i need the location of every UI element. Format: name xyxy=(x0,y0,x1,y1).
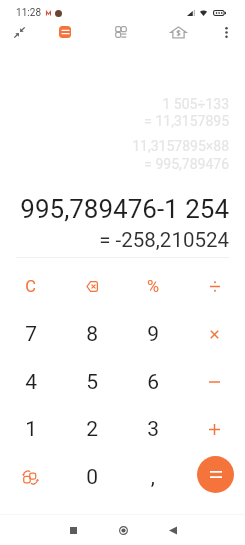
button[interactable]: Add xyxy=(184,405,245,453)
button[interactable]: 4 xyxy=(0,358,61,406)
button[interactable]: Equals xyxy=(197,456,234,493)
button[interactable]: Convert units xyxy=(0,453,61,501)
staticText: = 995,789476 xyxy=(144,156,229,172)
button[interactable]: 7 xyxy=(0,310,61,358)
button[interactable]: 8 xyxy=(61,310,122,358)
button[interactable]: Back xyxy=(158,515,188,545)
staticText: 9 xyxy=(147,322,159,347)
button[interactable]: Unit converter xyxy=(110,21,132,43)
button[interactable]: , xyxy=(122,453,183,501)
staticText: = -258,210524 xyxy=(99,228,229,252)
staticText: C xyxy=(25,277,36,296)
button[interactable]: Subtract xyxy=(184,358,245,406)
staticText: = 11,3157895 xyxy=(144,113,229,129)
button[interactable]: C xyxy=(0,262,61,310)
button[interactable]: More options xyxy=(215,21,237,43)
staticText: 995,789476-1 254 xyxy=(20,194,229,224)
staticText: 4 xyxy=(25,370,37,395)
button[interactable]: 5 xyxy=(61,358,122,406)
staticText: 0 xyxy=(86,465,98,490)
staticText: 6 xyxy=(147,370,159,395)
button[interactable]: 2 xyxy=(61,405,122,453)
button[interactable]: Calculator xyxy=(54,21,76,43)
staticText: 1 xyxy=(25,417,37,442)
staticText: , xyxy=(150,465,155,490)
button[interactable]: Recents xyxy=(58,515,88,545)
button[interactable]: Collapse xyxy=(8,21,30,43)
staticText: 3 xyxy=(147,417,159,442)
staticText: 1 505÷133 xyxy=(162,96,229,112)
staticText: 2 xyxy=(86,417,98,442)
button[interactable]: Divide xyxy=(184,262,245,310)
button[interactable]: 0 xyxy=(61,453,122,501)
staticText: 11,3157895×88 xyxy=(132,138,229,154)
button[interactable]: 6 xyxy=(122,358,183,406)
button[interactable]: % xyxy=(122,262,183,310)
button[interactable]: Mortgage calculator xyxy=(167,21,189,43)
button[interactable]: 1 xyxy=(0,405,61,453)
button[interactable]: Backspace xyxy=(61,262,122,310)
button[interactable]: Home xyxy=(108,515,138,545)
staticText: 8 xyxy=(86,322,98,347)
button[interactable]: 9 xyxy=(122,310,183,358)
button[interactable]: Multiply xyxy=(184,310,245,358)
staticText: 5 xyxy=(86,370,98,395)
staticText: 7 xyxy=(25,322,37,347)
button[interactable]: 3 xyxy=(122,405,183,453)
staticText: 11:28 xyxy=(16,7,41,19)
staticText: % xyxy=(146,277,159,296)
